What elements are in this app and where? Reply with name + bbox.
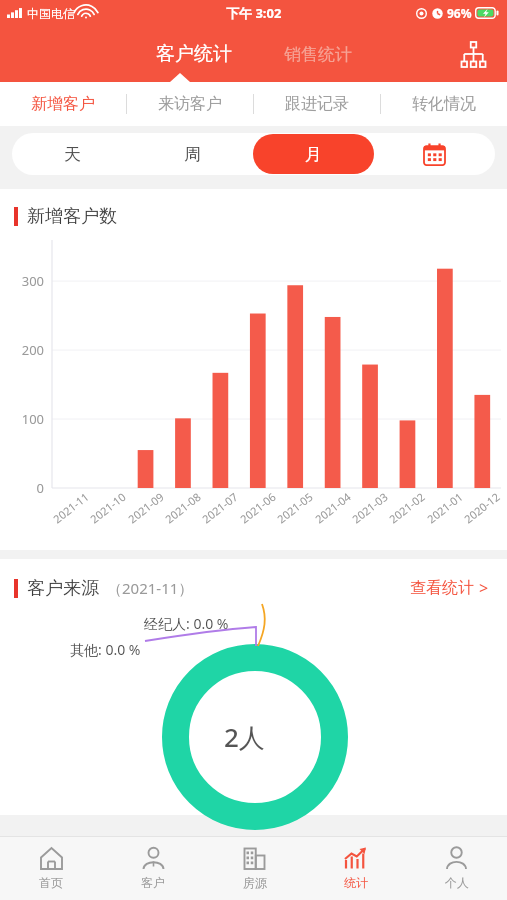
staticText: 客户 [141,875,165,890]
staticText: 2021-05 [274,489,316,526]
button[interactable]: 客户统计 [144,36,244,72]
staticText: 2人 [224,719,265,755]
staticText: 2021-01 [424,489,466,526]
staticText: 2021-03 [349,489,391,526]
button[interactable]: 统计 [305,836,406,900]
staticText: 月 [305,144,322,165]
staticText: 客户统计 [156,42,232,66]
staticText: （2021-11） [107,578,194,598]
staticText: > [479,577,489,599]
staticText: 2021-08 [162,489,204,526]
button[interactable]: 查看统计 [406,573,493,603]
button[interactable]: Organization chart [455,36,491,72]
staticText: 中国电信 [27,6,75,21]
staticText: 跟进记录 [285,94,349,114]
button[interactable]: 天 [12,133,132,175]
button[interactable]: 首页 [0,836,102,900]
button[interactable]: 房源 [204,836,305,900]
staticText: 经纪人: 0.0 % [144,614,229,633]
button[interactable]: 转化情况 [381,82,507,126]
staticText: 2021-06 [237,489,279,526]
staticText: 2021-10 [87,489,129,526]
button[interactable]: 个人 [406,836,507,900]
staticText: 统计 [344,875,368,890]
staticText: 周 [184,144,201,165]
button[interactable]: 新增客户 [0,82,126,126]
staticText: 2021-09 [125,489,167,526]
button[interactable]: Pick date range [374,133,495,175]
staticText: 来访客户 [158,94,222,114]
staticText: 新增客户数 [27,205,117,228]
button[interactable]: 客户 [102,836,204,900]
staticText: 新增客户 [31,94,95,114]
staticText: 天 [64,144,81,165]
staticText: 2021-02 [386,489,428,526]
staticText: 2021-11 [50,489,92,526]
staticText: 房源 [243,875,267,890]
staticText: 2020-12 [461,489,503,526]
button[interactable]: 周 [132,133,253,175]
staticText: 其他: 0.0 % [70,640,141,659]
staticText: 查看统计 [410,578,474,598]
staticText: 首页 [39,875,63,890]
staticText: 200 [21,341,44,359]
staticText: 个人 [445,875,469,890]
staticText: 96% [447,5,472,21]
staticText: 0 [36,479,44,497]
staticText: 销售统计 [284,44,352,65]
staticText: 2021-07 [199,489,241,526]
button[interactable]: 来访客户 [127,82,253,126]
staticText: 客户来源 [27,577,99,600]
button[interactable]: 月 [253,134,374,174]
button[interactable]: 销售统计 [272,38,364,71]
button[interactable]: 跟进记录 [254,82,380,126]
staticText: 转化情况 [412,94,476,114]
staticText: 2021-04 [312,489,354,526]
staticText: 100 [21,410,44,428]
staticText: 下午 3:02 [226,4,282,22]
staticText: 300 [21,272,44,290]
